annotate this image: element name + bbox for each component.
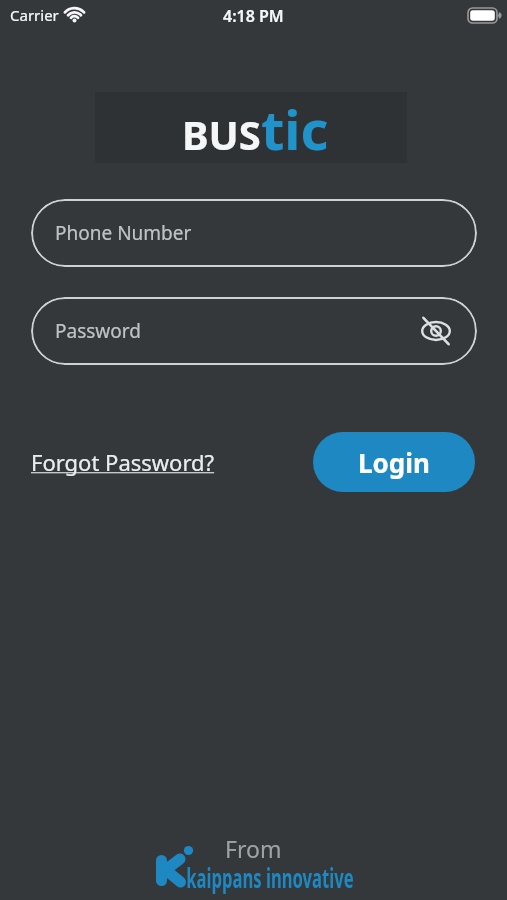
staticText: Password (55, 318, 141, 344)
button[interactable]: Phone Number (31, 199, 477, 267)
button[interactable]: Login (313, 432, 475, 492)
button[interactable]: Forgot Password? (31, 447, 215, 477)
staticText: Forgot Password? (31, 447, 215, 477)
button[interactable]: Password (31, 297, 477, 365)
staticText: kaippans innovative (186, 860, 354, 895)
staticText: 4:18 PM (223, 5, 284, 27)
staticText: BUStic (182, 92, 329, 163)
staticText: Phone Number (55, 220, 192, 246)
staticText: Login (358, 445, 430, 480)
staticText: From (225, 833, 282, 864)
staticText: Carrier (10, 5, 59, 25)
